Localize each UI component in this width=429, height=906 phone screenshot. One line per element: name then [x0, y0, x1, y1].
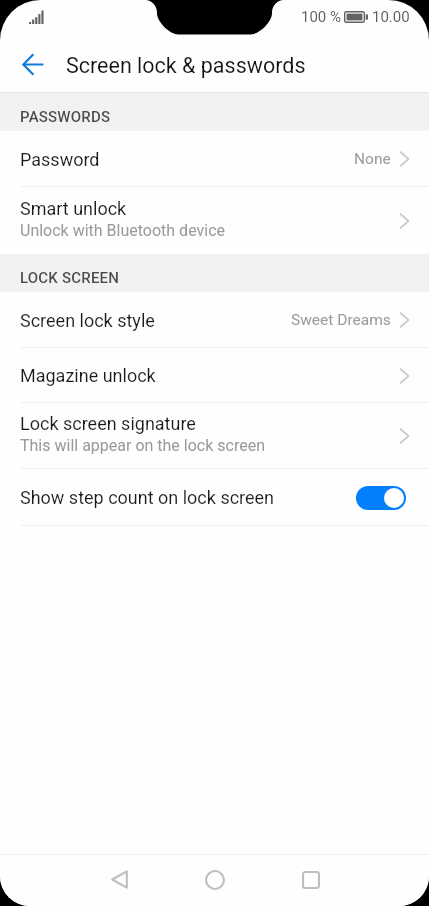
staticText: Password [20, 149, 100, 170]
staticText: 100 % [301, 8, 341, 26]
button[interactable]: Home [167, 855, 263, 906]
button[interactable]: Back [0, 36, 56, 92]
staticText: Screen lock & passwords [66, 53, 306, 78]
staticText: Show step count on lock screen [20, 487, 356, 508]
button[interactable]: Recent apps [263, 855, 359, 906]
staticText: Smart unlock [20, 198, 127, 219]
staticText: Sweet Dreams [291, 311, 391, 329]
button[interactable]: Magazine unlock [0, 348, 429, 403]
staticText: LOCK SCREEN [20, 269, 120, 287]
button[interactable]: Back [71, 855, 167, 906]
staticText: Magazine unlock [20, 365, 156, 386]
button[interactable]: Screen lock style [0, 292, 429, 348]
staticText: Lock screen signature [20, 413, 196, 434]
button[interactable]: Lock screen signature [0, 403, 429, 469]
staticText: 10.00 [372, 8, 410, 26]
staticText: This will appear on the lock screen [20, 436, 265, 455]
staticText: PASSWORDS [20, 108, 111, 126]
button[interactable]: Password [0, 131, 429, 187]
staticText: Screen lock style [20, 310, 155, 331]
staticText: None [354, 150, 391, 168]
button[interactable]: Smart unlock [0, 187, 429, 254]
button[interactable]: Show step count on lock screen [0, 469, 429, 526]
staticText: Unlock with Bluetooth device [20, 221, 226, 240]
